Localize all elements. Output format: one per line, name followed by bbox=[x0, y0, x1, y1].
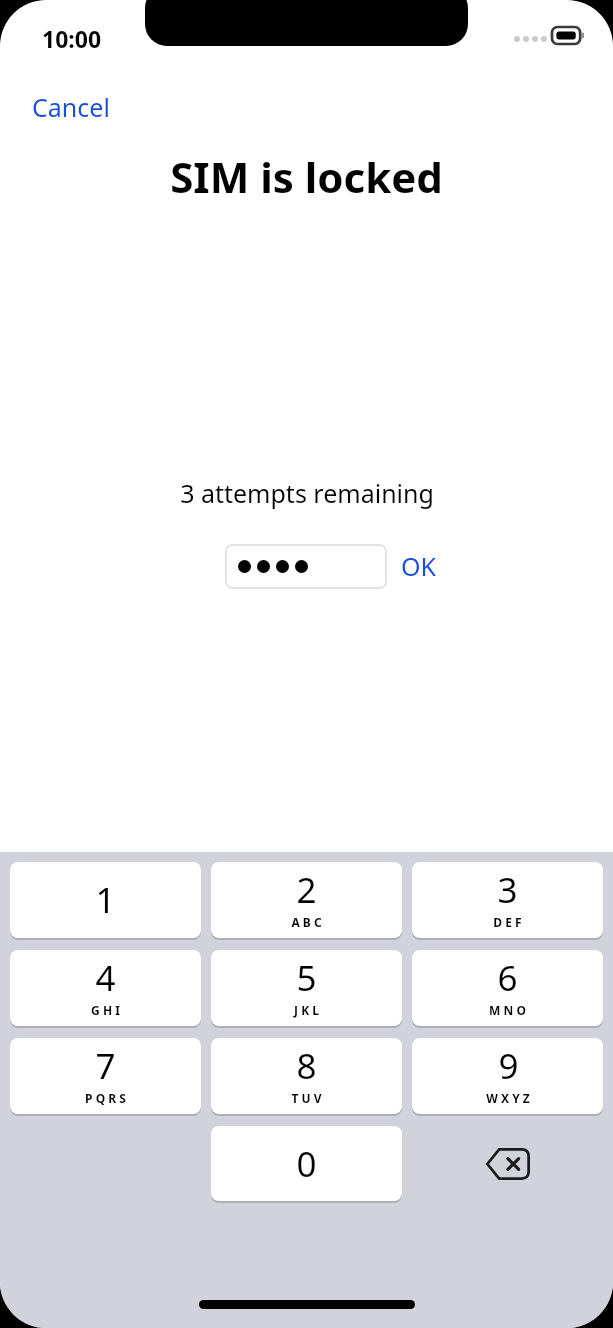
staticText: SIM is locked bbox=[170, 148, 443, 205]
staticText: 1 bbox=[95, 876, 116, 924]
button[interactable]: Delete bbox=[412, 1126, 603, 1201]
staticText: 0 bbox=[296, 1140, 317, 1188]
button[interactable]: 7 bbox=[10, 1038, 201, 1114]
staticText: 4 bbox=[95, 954, 116, 1002]
staticText: 6 bbox=[497, 954, 518, 1002]
staticText: G H I bbox=[91, 1002, 120, 1018]
staticText: D E F bbox=[493, 914, 522, 930]
staticText: J K L bbox=[294, 1002, 319, 1018]
staticText: 3 attempts remaining bbox=[180, 476, 434, 510]
staticText: 2 bbox=[296, 866, 317, 914]
staticText: 8 bbox=[296, 1042, 317, 1090]
button[interactable]: 6 bbox=[412, 950, 603, 1026]
button[interactable]: 4 bbox=[10, 950, 201, 1026]
button[interactable]: OK bbox=[387, 541, 451, 591]
staticText: M N O bbox=[489, 1002, 526, 1018]
staticText: A B C bbox=[291, 914, 322, 930]
button[interactable]: 0 bbox=[211, 1126, 402, 1201]
staticText: W X Y Z bbox=[486, 1090, 530, 1106]
staticText: OK bbox=[401, 549, 437, 583]
button[interactable]: Cancel bbox=[16, 84, 126, 130]
button[interactable]: 8 bbox=[211, 1038, 402, 1114]
button[interactable] bbox=[225, 544, 387, 589]
staticText: P Q R S bbox=[85, 1090, 126, 1106]
staticText: 7 bbox=[95, 1042, 116, 1090]
button[interactable]: 5 bbox=[211, 950, 402, 1026]
button[interactable]: 9 bbox=[412, 1038, 603, 1114]
button[interactable]: 3 bbox=[412, 862, 603, 938]
button[interactable]: 2 bbox=[211, 862, 402, 938]
staticText: 3 bbox=[497, 866, 518, 914]
staticText: 10:00 bbox=[42, 23, 102, 54]
staticText: T U V bbox=[291, 1090, 322, 1106]
staticText: Cancel bbox=[32, 90, 110, 124]
staticText: 5 bbox=[296, 954, 317, 1002]
staticText: 9 bbox=[498, 1042, 519, 1090]
button[interactable]: 1 bbox=[10, 862, 201, 938]
